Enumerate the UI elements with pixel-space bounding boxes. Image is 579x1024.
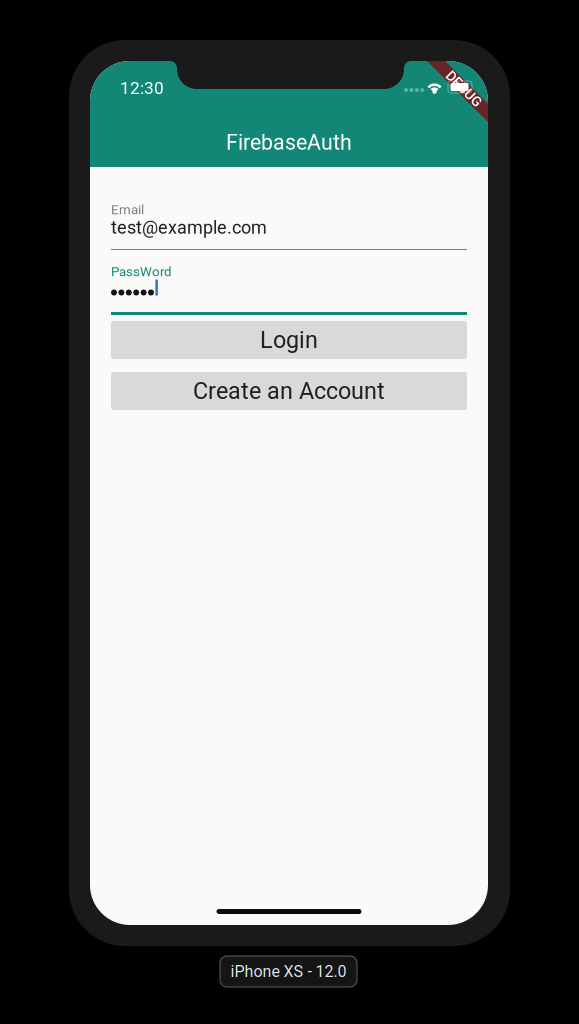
button[interactable]: Create an Account [111,372,467,410]
staticText: Create an Account [193,377,385,405]
button[interactable]: Login [111,321,467,359]
staticText: test@example.com [111,217,267,238]
staticText: PassWord [111,264,172,280]
staticText: Email [111,202,144,218]
staticText: FirebaseAuth [226,130,352,155]
staticText: Login [260,326,318,354]
staticText: iPhone XS - 12.0 [230,962,346,981]
staticText: 12:30 [120,78,164,98]
staticText: DEBUG [441,81,486,97]
